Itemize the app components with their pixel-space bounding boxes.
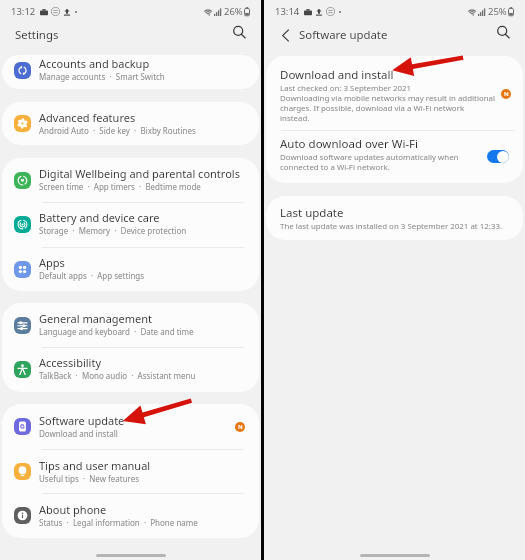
staticText: Auto download over Wi-Fi (280, 137, 419, 150)
staticText: Software update (299, 27, 388, 43)
staticText: Accounts and backup (39, 58, 150, 71)
staticText: Android Auto · Side key · Bixby Routines (39, 125, 196, 136)
button[interactable]: Apps (2, 247, 259, 291)
staticText: Advanced features (39, 112, 136, 125)
button[interactable]: Download and install (266, 56, 523, 130)
button[interactable]: Battery and device care (2, 202, 259, 246)
button[interactable]: Last update (266, 196, 523, 240)
staticText: N (238, 423, 243, 431)
button[interactable]: Tips and user manual (2, 449, 259, 494)
staticText: Download software updates automatically … (280, 152, 459, 172)
staticText: Accessibility (39, 357, 102, 370)
button[interactable]: Auto download over Wi-Fi toggle (487, 150, 509, 163)
staticText: About phone (39, 504, 107, 517)
button[interactable]: Advanced features (2, 102, 259, 145)
staticText: Settings (15, 27, 59, 43)
button[interactable]: Accounts and backup (2, 55, 259, 87)
staticText: Apps (39, 257, 65, 270)
button[interactable]: Software update (2, 404, 259, 449)
staticText: 13:14 (275, 5, 300, 18)
staticText: Download and install (39, 428, 118, 439)
staticText: Download and install (280, 68, 394, 81)
staticText: Downloading via mobile networks may resu… (280, 93, 496, 123)
staticText: 26% (224, 5, 243, 18)
staticText: Useful tips · New features (39, 473, 140, 484)
staticText: N (504, 90, 509, 98)
staticText: 13:12 (11, 5, 36, 18)
staticText: Default apps · App settings (39, 270, 145, 281)
staticText: Manage accounts · Smart Switch (39, 71, 165, 82)
button[interactable]: Back (276, 26, 294, 44)
staticText: Storage · Memory · Device protection (39, 225, 187, 236)
staticText: The last update was installed on 3 Septe… (280, 221, 503, 231)
staticText: TalkBack · Mono audio · Assistant menu (39, 370, 196, 381)
button[interactable]: General management (2, 303, 259, 347)
staticText: Battery and device care (39, 212, 160, 225)
button[interactable]: Search (493, 22, 514, 43)
staticText: Last update (280, 206, 344, 219)
button[interactable]: Accessibility (2, 347, 259, 391)
staticText: Last checked on: 3 September 2021 (280, 83, 412, 93)
staticText: Software update (39, 415, 125, 428)
button[interactable]: Search (229, 22, 250, 43)
staticText: General management (39, 313, 153, 326)
staticText: Language and keyboard · Date and time (39, 326, 194, 337)
button[interactable]: About phone (2, 493, 259, 538)
staticText: Tips and user manual (39, 460, 151, 473)
staticText: Status · Legal information · Phone name (39, 517, 198, 528)
button[interactable]: Digital Wellbeing and parental controls (2, 158, 259, 202)
staticText: Digital Wellbeing and parental controls (39, 168, 240, 181)
staticText: 25% (488, 5, 507, 18)
staticText: Screen time · App timers · Bedtime mode (39, 181, 201, 192)
button[interactable]: Auto download over Wi-Fi (266, 131, 523, 183)
